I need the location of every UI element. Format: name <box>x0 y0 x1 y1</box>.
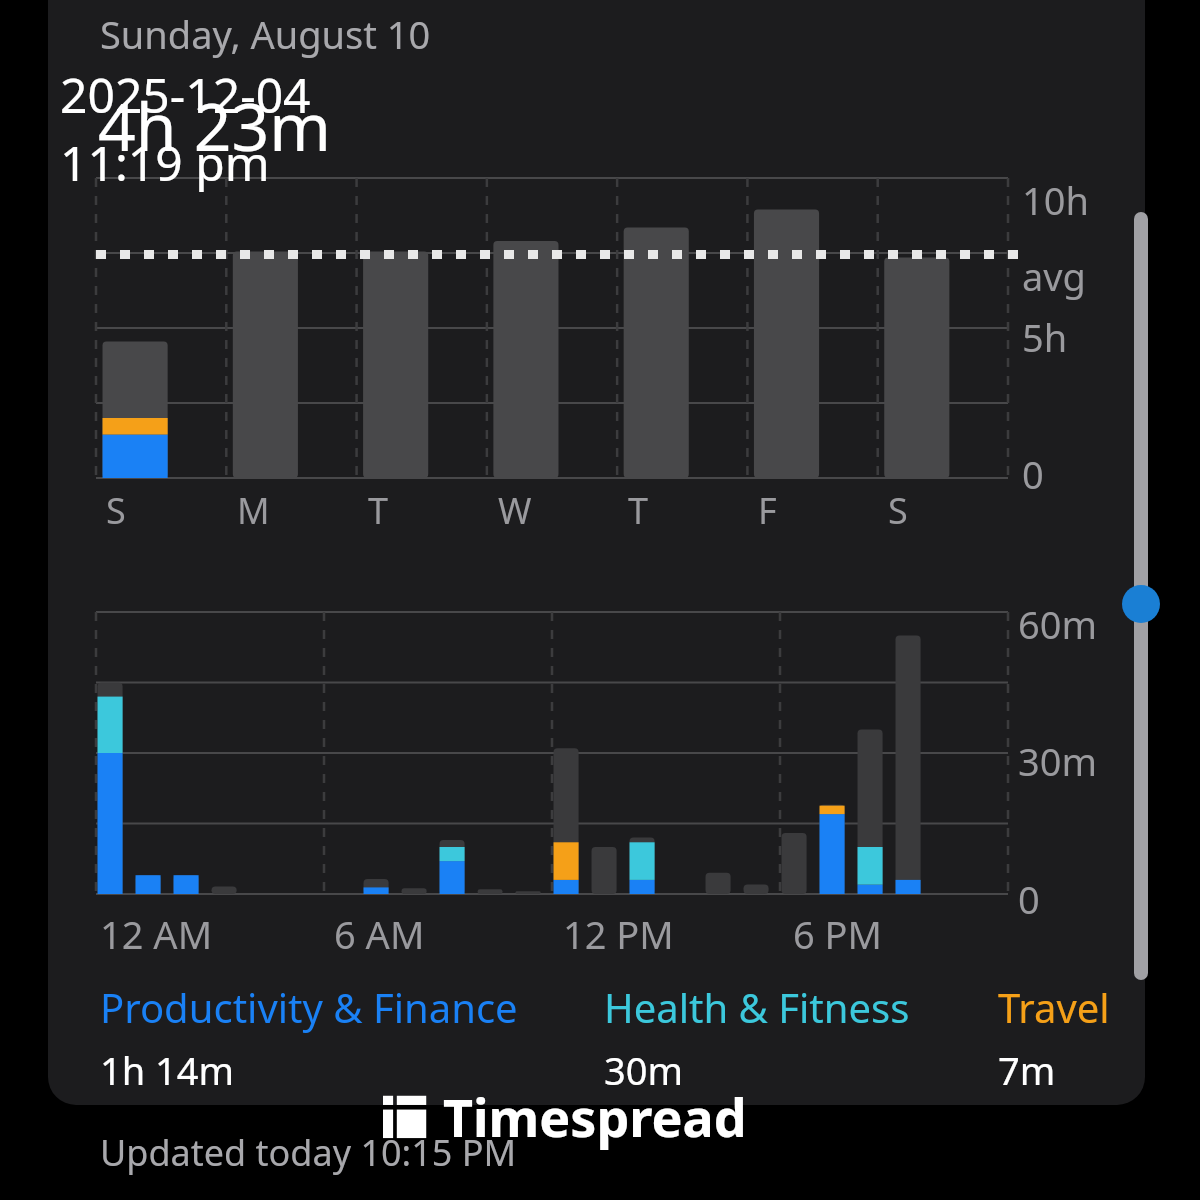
staticText: 10h <box>1022 174 1089 226</box>
staticText: S <box>106 486 126 535</box>
button[interactable] <box>96 612 1008 894</box>
staticText: 7m <box>998 1044 1056 1096</box>
staticText: 30m <box>1018 735 1098 787</box>
staticText: 6 AM <box>334 908 425 960</box>
staticText: W <box>498 486 532 535</box>
staticText: 5h <box>1022 311 1068 363</box>
button[interactable]: Health & Fitness <box>604 980 910 1096</box>
button[interactable]: Travel <box>998 980 1110 1096</box>
staticText: avg <box>1022 250 1086 302</box>
staticText: 0 <box>1022 448 1044 500</box>
button[interactable]: Productivity & Finance <box>100 980 518 1096</box>
staticText: 2025-12-04 <box>60 62 311 127</box>
staticText: 4h 23m <box>98 80 331 170</box>
staticText: Updated today 10:15 PM <box>100 1128 517 1177</box>
staticText: T <box>628 486 649 535</box>
staticText: Sunday, August 10 <box>100 8 431 60</box>
staticText: 6 PM <box>793 908 883 960</box>
staticText: F <box>758 486 777 535</box>
staticText: 11:19 pm <box>60 130 270 195</box>
staticText: 0 <box>1018 873 1040 925</box>
staticText: S <box>888 486 908 535</box>
other: Scroll position <box>1122 585 1160 623</box>
staticText: 1h 14m <box>100 1044 235 1096</box>
staticText: Travel <box>998 980 1110 1034</box>
staticText: T <box>368 486 389 535</box>
staticText: 60m <box>1018 598 1098 650</box>
staticText: Productivity & Finance <box>100 980 518 1034</box>
staticText: M <box>237 486 270 535</box>
staticText: 12 AM <box>100 908 213 960</box>
staticText: Timespread <box>443 1081 747 1152</box>
staticText: 12 PM <box>563 908 674 960</box>
staticText: 30m <box>604 1044 684 1096</box>
button[interactable] <box>96 178 1008 478</box>
staticText: Health & Fitness <box>604 980 910 1034</box>
